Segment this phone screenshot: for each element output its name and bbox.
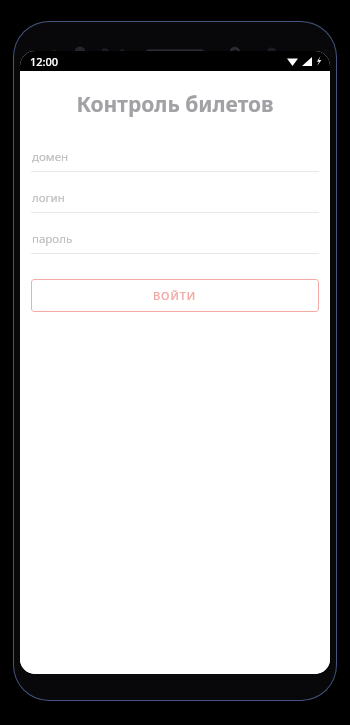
button[interactable]: логин: [31, 190, 319, 213]
staticText: домен: [32, 149, 69, 165]
button[interactable]: домен: [31, 149, 319, 172]
staticText: ВОЙТИ: [153, 288, 197, 303]
staticText: Контроль билетов: [20, 90, 330, 119]
button[interactable]: пароль: [31, 231, 319, 254]
button[interactable]: ВОЙТИ: [31, 279, 319, 312]
staticText: 12:00: [30, 54, 59, 69]
staticText: логин: [32, 190, 65, 206]
staticText: пароль: [32, 231, 73, 247]
